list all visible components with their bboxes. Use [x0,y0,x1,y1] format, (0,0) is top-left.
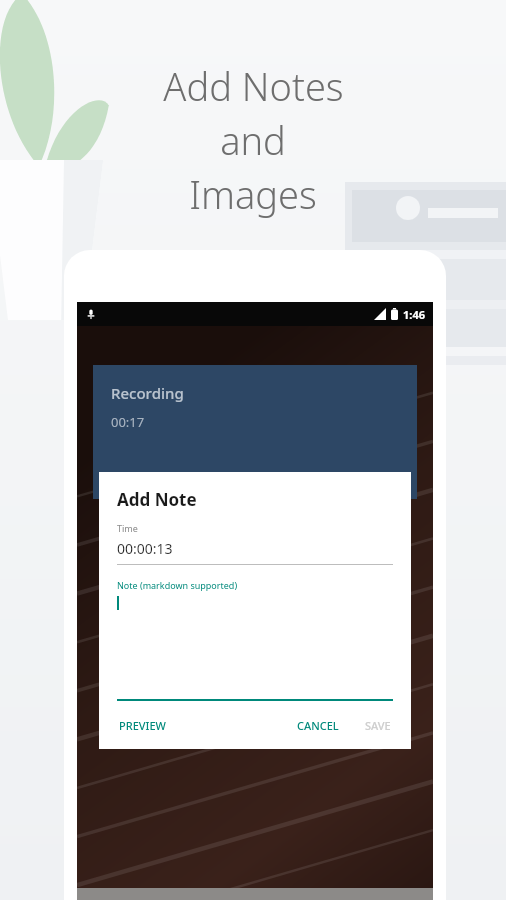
staticText: 00:00:13 [117,539,173,558]
button[interactable]: Recording [93,365,417,499]
button[interactable]: CANCEL [295,710,341,741]
staticText: 1:46 [403,307,425,322]
staticText: CANCEL [297,718,339,733]
staticText: 00:17 [111,413,145,431]
staticText: Recording [111,383,184,403]
staticText: Note (markdown supported) [117,579,238,591]
staticText: Time [117,522,138,534]
staticText: Add Note [117,488,197,511]
button[interactable]: SAVE [363,710,393,741]
staticText: SAVE [365,718,391,733]
staticText: Images [189,168,317,220]
staticText: Add Notes [163,60,344,112]
staticText: and [220,114,286,166]
button[interactable]: PREVIEW [117,710,168,741]
staticText: PREVIEW [119,718,166,733]
